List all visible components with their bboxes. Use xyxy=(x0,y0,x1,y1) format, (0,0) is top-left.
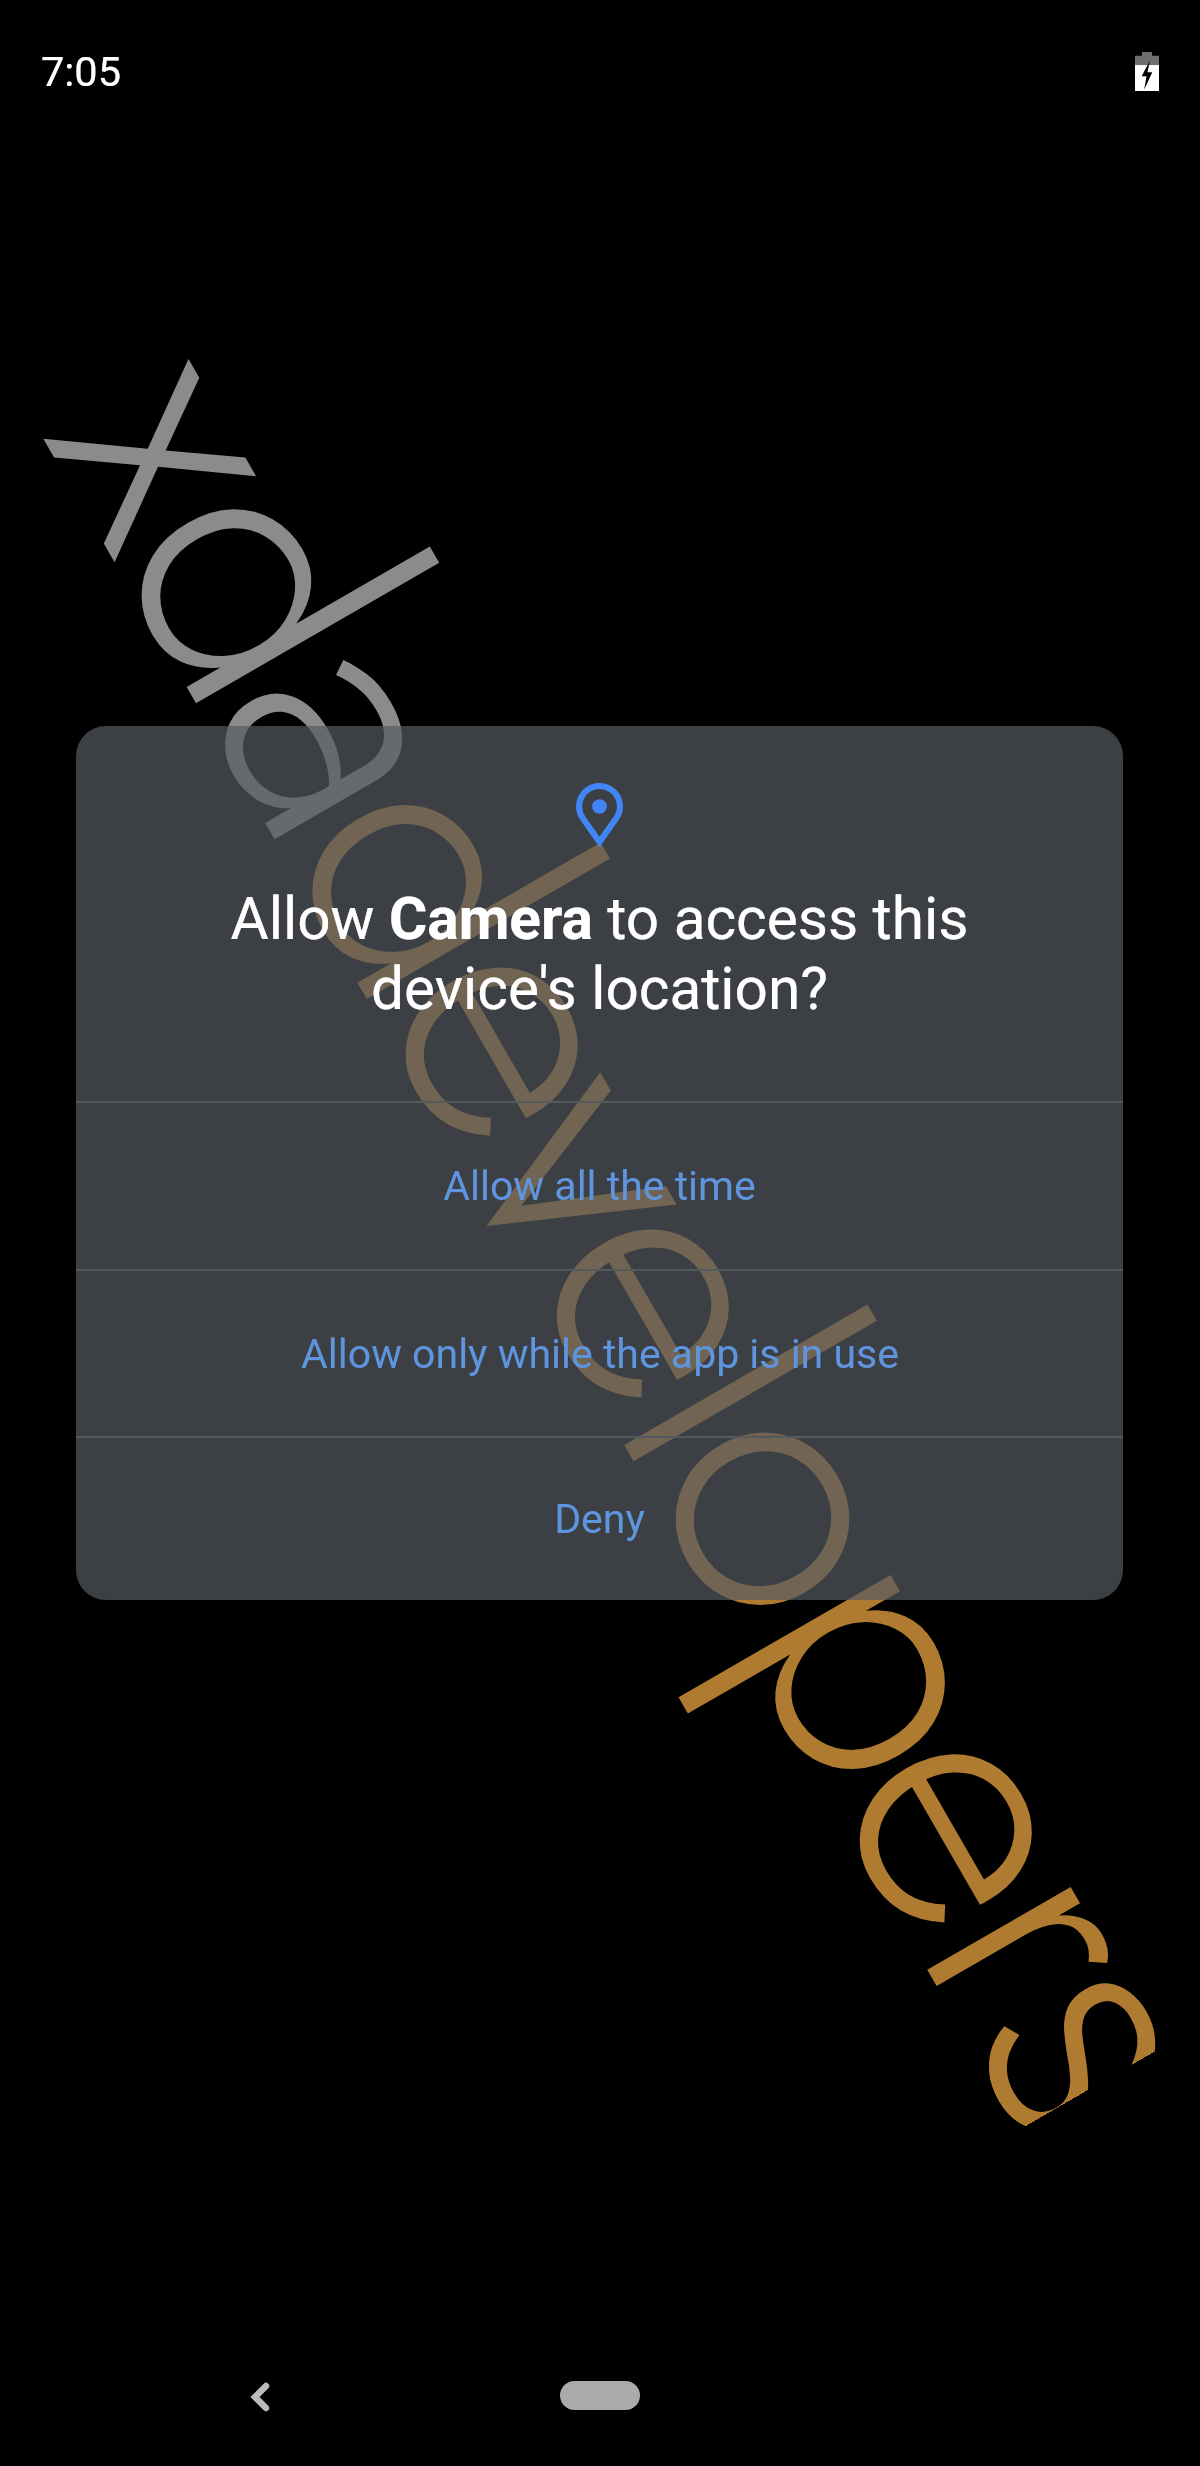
button[interactable]: Back xyxy=(215,2352,305,2442)
staticText: xda developers xyxy=(0,245,1200,2197)
staticText: Deny xyxy=(554,1495,645,1543)
staticText: Allow only while the app is in use xyxy=(301,1330,899,1378)
button[interactable]: Allow all the time xyxy=(76,1103,1123,1269)
button[interactable]: Deny xyxy=(76,1438,1123,1600)
button[interactable]: Allow only while the app is in use xyxy=(76,1271,1123,1436)
staticText: Allow all the time xyxy=(443,1162,756,1210)
button[interactable]: Home xyxy=(560,2381,640,2410)
staticText: 7:05 xyxy=(41,47,122,96)
staticText: Allow Camera to access this device's loc… xyxy=(172,885,1027,1024)
